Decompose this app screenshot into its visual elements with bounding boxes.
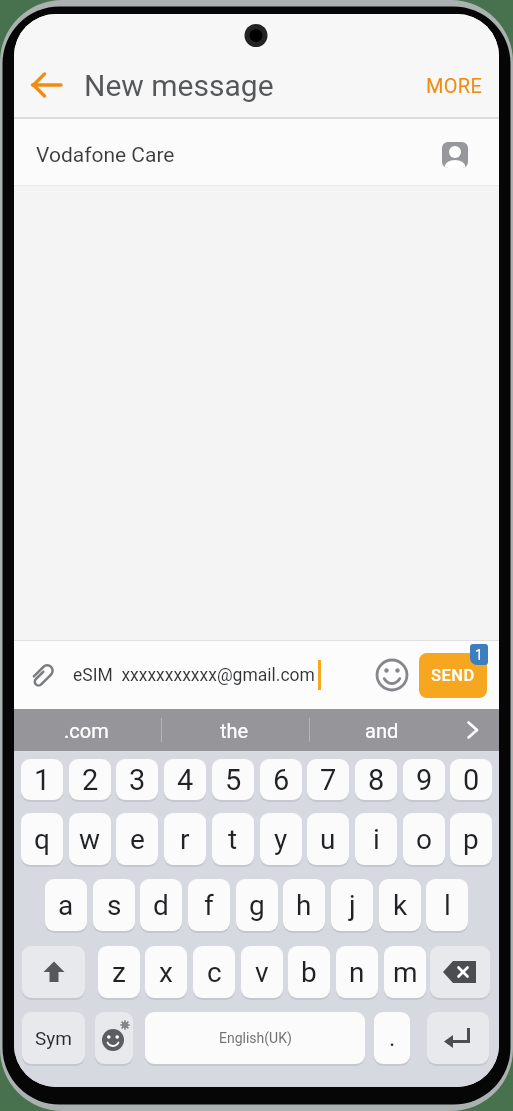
button[interactable]: 8 — [355, 759, 397, 800]
staticText: q — [34, 823, 50, 856]
button[interactable] — [95, 1012, 133, 1064]
button[interactable]: u — [307, 813, 349, 865]
button[interactable] — [430, 946, 490, 998]
button[interactable]: e — [116, 813, 158, 865]
staticText: u — [320, 823, 336, 856]
button[interactable]: 1 — [21, 759, 63, 800]
button[interactable]: f — [188, 879, 230, 931]
button[interactable]: the — [179, 709, 289, 751]
button[interactable] — [31, 69, 63, 101]
staticText: New message — [84, 68, 274, 103]
staticText: 4 — [177, 763, 194, 797]
button[interactable]: k — [379, 879, 421, 931]
button[interactable]: h — [283, 879, 325, 931]
staticText: v — [255, 956, 269, 989]
staticText: b — [301, 956, 317, 989]
button[interactable] — [375, 658, 409, 692]
staticText: l — [444, 889, 451, 922]
staticText: c — [207, 956, 222, 989]
button[interactable]: c — [193, 946, 235, 998]
staticText: f — [204, 889, 214, 922]
button[interactable]: 0 — [450, 759, 492, 800]
staticText: English(UK) — [219, 1030, 292, 1046]
staticText: the — [220, 719, 249, 742]
staticText: g — [249, 889, 265, 922]
staticText: .com — [64, 719, 109, 742]
button[interactable]: b — [288, 946, 330, 998]
staticText: r — [180, 823, 190, 856]
button[interactable]: g — [236, 879, 278, 931]
staticText: y — [274, 823, 288, 856]
button[interactable]: t — [212, 813, 254, 865]
button[interactable]: q — [21, 813, 63, 865]
button[interactable]: z — [98, 946, 140, 998]
staticText: w — [79, 823, 101, 856]
staticText: MORE — [426, 74, 483, 97]
button[interactable]: 2 — [69, 759, 111, 800]
button[interactable]: 3 — [116, 759, 158, 800]
staticText: t — [228, 823, 238, 856]
staticText: Vodafone Care — [36, 143, 175, 168]
button[interactable]: SEND — [419, 653, 487, 698]
button[interactable]: 4 — [164, 759, 206, 800]
button[interactable]: p — [450, 813, 492, 865]
button[interactable]: and — [327, 709, 437, 751]
staticText: . — [389, 1024, 396, 1052]
button[interactable]: d — [140, 879, 182, 931]
button[interactable] — [427, 1012, 489, 1064]
button[interactable]: a — [45, 879, 87, 931]
staticText: and — [365, 719, 399, 742]
button[interactable]: x — [145, 946, 187, 998]
staticText: j — [349, 889, 356, 922]
staticText: eSIM xxxxxxxxxxx@gmail.com — [73, 665, 315, 686]
staticText: z — [112, 956, 126, 989]
button[interactable]: r — [164, 813, 206, 865]
staticText: 3 — [129, 763, 146, 797]
button[interactable]: l — [426, 879, 468, 931]
button[interactable] — [28, 660, 58, 690]
button[interactable]: 9 — [403, 759, 445, 800]
staticText: 1 — [475, 647, 483, 663]
staticText: p — [463, 823, 479, 856]
staticText: Sym — [35, 1027, 72, 1049]
staticText: 5 — [225, 763, 242, 797]
button[interactable]: 6 — [260, 759, 302, 800]
staticText: 2 — [82, 763, 99, 797]
staticText: SEND — [431, 666, 475, 685]
button[interactable]: j — [331, 879, 373, 931]
button[interactable]: s — [93, 879, 135, 931]
staticText: o — [416, 823, 432, 856]
staticText: 1 — [34, 763, 51, 797]
staticText: 0 — [463, 763, 480, 797]
button[interactable]: n — [336, 946, 378, 998]
staticText: m — [393, 956, 418, 989]
button[interactable]: Vodafone Care — [14, 119, 499, 185]
button[interactable]: .com — [31, 709, 141, 751]
staticText: 8 — [368, 763, 385, 797]
staticText: i — [373, 823, 380, 856]
staticText: x — [159, 956, 173, 989]
button[interactable]: . — [374, 1012, 410, 1064]
button[interactable]: English(UK) — [145, 1012, 365, 1064]
staticText: n — [349, 956, 365, 989]
button[interactable]: y — [260, 813, 302, 865]
button[interactable] — [466, 722, 480, 738]
button[interactable]: Sym — [22, 1012, 85, 1064]
button[interactable]: w — [69, 813, 111, 865]
staticText: a — [58, 889, 74, 922]
button[interactable]: MORE — [426, 74, 483, 97]
button[interactable]: v — [241, 946, 283, 998]
staticText: d — [153, 889, 169, 922]
button[interactable]: 7 — [307, 759, 349, 800]
staticText: s — [107, 889, 122, 922]
button[interactable]: m — [384, 946, 426, 998]
staticText: 6 — [273, 763, 290, 797]
staticText: k — [393, 889, 408, 922]
button[interactable]: 5 — [212, 759, 254, 800]
button[interactable]: i — [355, 813, 397, 865]
button[interactable] — [22, 946, 85, 998]
staticText: 7 — [320, 763, 337, 797]
button[interactable]: o — [403, 813, 445, 865]
staticText: e — [130, 823, 145, 856]
staticText: h — [296, 889, 312, 922]
